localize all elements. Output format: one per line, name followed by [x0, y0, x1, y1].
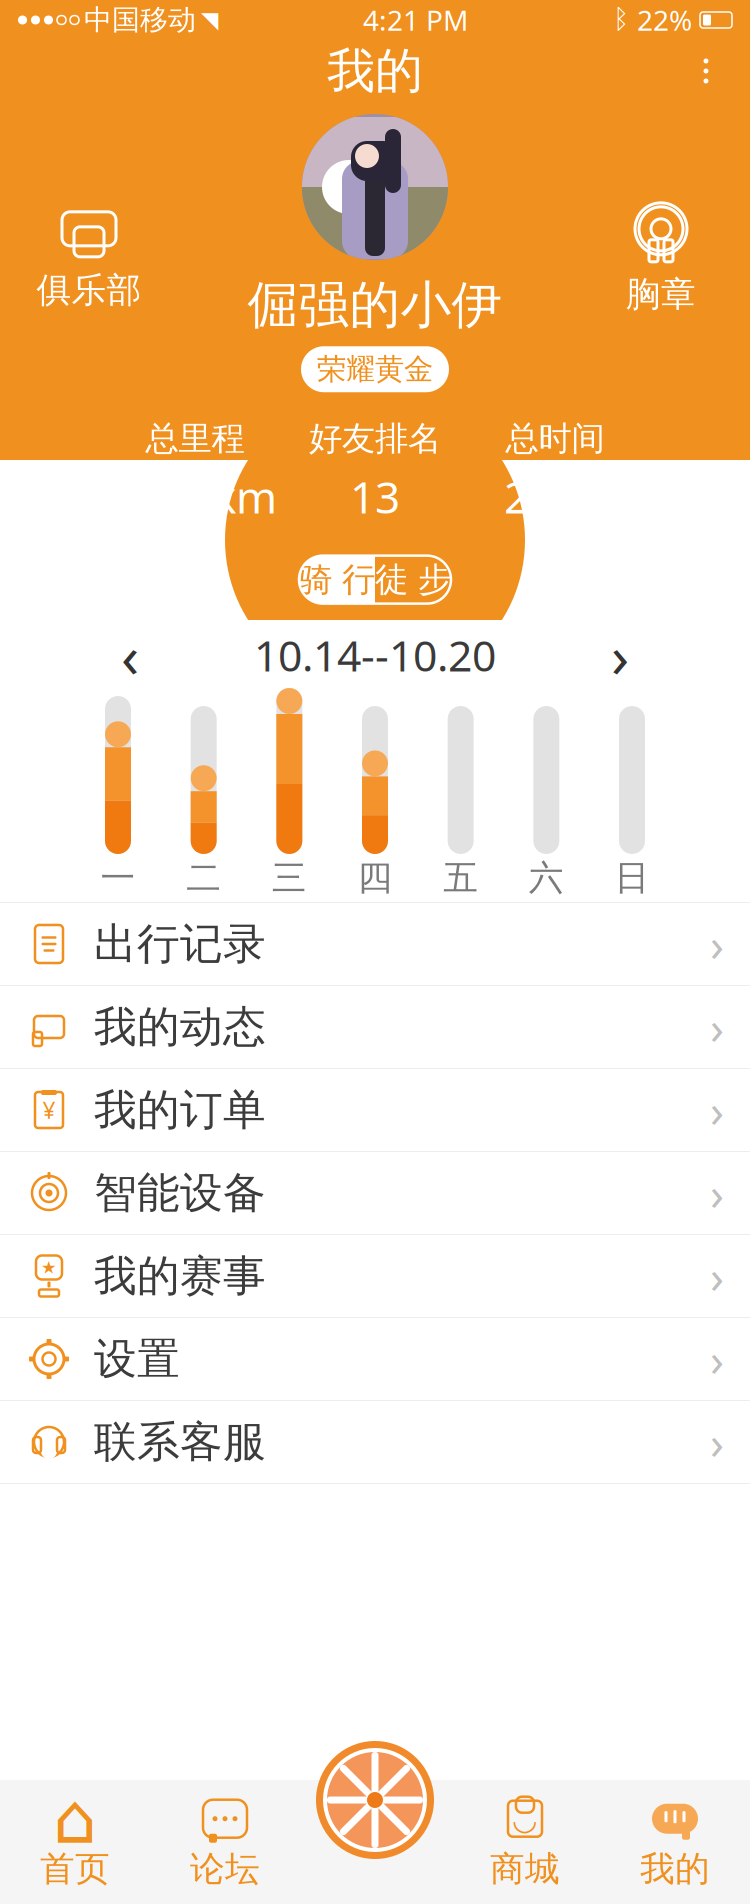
staticText: 我的订单	[94, 1084, 266, 1136]
staticText: 胸章	[626, 273, 696, 315]
staticText: 总时间	[505, 418, 604, 459]
button[interactable]: 俱乐部	[14, 193, 164, 313]
staticText: ›	[710, 1163, 724, 1223]
button[interactable]: ★	[0, 1235, 750, 1318]
button[interactable]: 我的	[600, 1780, 750, 1904]
staticText: ›	[710, 914, 724, 974]
staticText: 联系客服	[94, 1416, 266, 1468]
button[interactable]: 我的动态	[0, 986, 750, 1069]
staticText: 三	[272, 857, 307, 899]
staticText: ¥	[42, 1095, 55, 1125]
button[interactable]: 设置	[0, 1318, 750, 1401]
staticText: 13	[350, 467, 400, 526]
staticText: 出行记录	[94, 918, 266, 970]
staticText: ›	[710, 1412, 724, 1472]
button[interactable]: ¥	[0, 1069, 750, 1152]
button[interactable]: 骑行	[315, 1740, 435, 1860]
staticText: ›	[710, 1080, 724, 1140]
button[interactable]: 智能设备	[0, 1152, 750, 1235]
staticText: 论坛	[190, 1848, 260, 1890]
button[interactable]: ◡	[450, 1780, 600, 1904]
staticText: 我的赛事	[94, 1250, 266, 1302]
staticText: ‹	[121, 616, 139, 694]
staticText: 10.14--10.20	[254, 627, 496, 683]
staticText: 六	[529, 857, 564, 899]
staticText: ›	[710, 997, 724, 1057]
staticText: ⌂	[53, 1779, 97, 1858]
button[interactable]: 骑 行	[299, 556, 375, 604]
staticText: ◡	[512, 1803, 538, 1836]
button[interactable]: 出行记录	[0, 903, 750, 986]
staticText: 5692km	[113, 467, 277, 526]
staticText: 荣耀黄金	[317, 351, 433, 387]
staticText: 商城	[490, 1848, 560, 1890]
staticText: 总里程	[145, 418, 244, 459]
staticText: 设置	[94, 1333, 180, 1385]
button[interactable]: 联系客服	[0, 1401, 750, 1484]
button[interactable]: 胸章	[586, 193, 736, 313]
staticText: 22%	[637, 1, 692, 39]
button[interactable]: 下一周	[588, 627, 652, 683]
staticText: 骑 行	[299, 559, 375, 600]
button[interactable]: 徒 步	[375, 556, 451, 604]
staticText: 四	[357, 857, 392, 899]
staticText: 我的	[327, 41, 423, 100]
staticText: 俱乐部	[36, 269, 141, 311]
staticText: 日	[614, 857, 649, 899]
staticText: 徒 步	[375, 559, 451, 600]
staticText: ›	[710, 1246, 724, 1306]
staticText: 五	[443, 857, 478, 899]
button[interactable]: 更多	[676, 41, 736, 101]
staticText: 首页	[40, 1848, 110, 1890]
staticText: 智能设备	[94, 1167, 266, 1219]
staticText: 好友排名	[309, 418, 441, 459]
staticText: ›	[710, 1329, 724, 1389]
staticText: ᛒ	[613, 7, 629, 33]
staticText: 二	[186, 857, 221, 899]
staticText: ★	[41, 1258, 57, 1277]
staticText: 我的	[640, 1848, 710, 1890]
button[interactable]: 上一周	[98, 627, 162, 683]
staticText: 我的动态	[94, 1001, 266, 1053]
staticText: 倔强的小伊	[247, 274, 502, 336]
staticText: ›	[611, 616, 629, 694]
staticText: 一	[100, 857, 135, 899]
staticText: 265h	[504, 467, 606, 526]
staticText: 4:21 PM	[363, 1, 468, 39]
staticText: 中国移动	[84, 3, 196, 37]
button[interactable]: ⌂	[0, 1780, 150, 1904]
button[interactable]: 论坛	[150, 1780, 300, 1904]
staticText: ◥	[201, 7, 218, 33]
